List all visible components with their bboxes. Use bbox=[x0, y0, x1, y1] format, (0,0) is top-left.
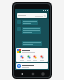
button[interactable] bbox=[16, 63, 48, 69]
button[interactable] bbox=[22, 27, 41, 34]
button[interactable] bbox=[22, 20, 38, 25]
button[interactable]: App suggestion bbox=[33, 55, 37, 61]
button[interactable]: Home bbox=[29, 71, 36, 77]
button[interactable]: App suggestion bbox=[27, 55, 31, 61]
button[interactable]: Search bbox=[17, 13, 47, 18]
button[interactable]: App suggestion bbox=[16, 48, 48, 62]
button[interactable]: Recents bbox=[39, 71, 46, 77]
button[interactable]: App suggestion bbox=[20, 55, 24, 61]
button[interactable]: Back bbox=[18, 71, 25, 77]
button[interactable]: App suggestion bbox=[40, 55, 44, 61]
button[interactable] bbox=[22, 41, 42, 46]
